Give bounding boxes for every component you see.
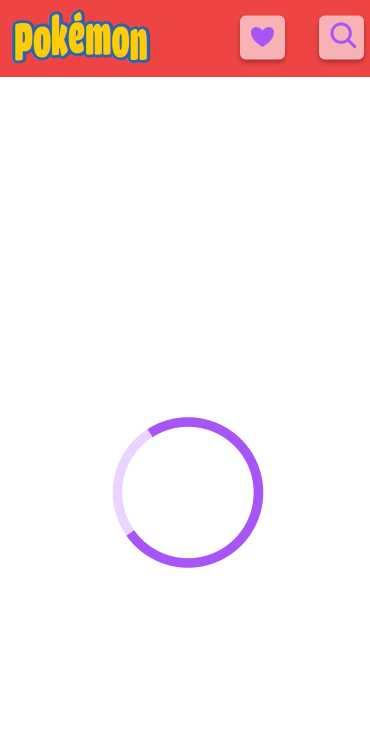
staticText: n [274, 4, 313, 72]
staticText: k [102, 0, 139, 68]
staticText: o [234, 1, 274, 69]
staticText: é [132, 0, 170, 66]
staticText: k [89, 2, 126, 69]
staticText: o [58, 6, 98, 73]
staticText: o [222, 4, 262, 72]
staticText: o [235, 3, 275, 70]
staticText: é [132, 0, 170, 62]
staticText: n [274, 7, 313, 75]
staticText: k [101, 2, 138, 69]
staticText: P [14, 6, 55, 74]
staticText: k [98, 0, 135, 65]
staticText: P [8, 8, 49, 75]
staticText: é [132, 1, 170, 69]
staticText: é [126, 0, 164, 67]
staticText: P [14, 9, 55, 77]
staticText: P [8, 5, 49, 72]
staticText: o [61, 4, 101, 72]
button[interactable]: Favorites [240, 16, 285, 60]
staticText: é [138, 0, 176, 67]
staticText: k [95, 0, 132, 68]
staticText: n [262, 7, 301, 75]
staticText: n [268, 6, 307, 73]
staticText: n [261, 6, 300, 73]
staticText: o [61, 1, 101, 69]
staticText: é [129, 1, 167, 68]
staticText: o [222, 1, 262, 69]
staticText: k [98, 3, 135, 70]
staticText: o [225, 0, 265, 67]
staticText: o [228, 0, 268, 67]
staticText: o [52, 6, 92, 73]
staticText: é [135, 1, 173, 68]
staticText: k [92, 0, 129, 65]
staticText: n [262, 4, 301, 72]
staticText: P [11, 9, 52, 76]
staticText: o [49, 1, 89, 69]
staticText: n [275, 6, 314, 73]
staticText: é [138, 0, 176, 64]
staticText: é [126, 0, 164, 64]
staticText: n [265, 3, 304, 70]
staticText: é [125, 0, 163, 66]
staticText: o [62, 3, 102, 70]
staticText: P [20, 5, 61, 72]
staticText: o [52, 0, 92, 67]
staticText: o [228, 6, 268, 73]
staticText: o [55, 3, 95, 70]
staticText: k [88, 0, 125, 68]
staticText: n [268, 9, 307, 76]
staticText: n [265, 9, 304, 76]
staticText: o [49, 4, 89, 72]
button[interactable]: Search [319, 16, 364, 60]
staticText: P [20, 8, 61, 75]
staticText: é [139, 0, 177, 66]
staticText: P [7, 6, 48, 74]
staticText: é [135, 0, 173, 63]
staticText: P [17, 9, 58, 76]
staticText: k [95, 3, 132, 71]
staticText: n [271, 3, 310, 70]
staticText: n [271, 9, 310, 76]
staticText: P [14, 3, 55, 70]
staticText: o [58, 0, 98, 67]
staticText: k [92, 3, 129, 70]
staticText: k [101, 0, 138, 66]
staticText: o [55, 0, 95, 67]
staticText: o [48, 3, 88, 70]
staticText: k [95, 0, 132, 64]
staticText: o [225, 6, 265, 73]
staticText: k [89, 0, 126, 66]
staticText: P [17, 4, 58, 71]
staticText: o [55, 6, 95, 73]
staticText: o [234, 4, 274, 72]
staticText: o [231, 6, 271, 73]
staticText: P [21, 6, 62, 74]
staticText: o [221, 3, 261, 70]
staticText: n [268, 3, 307, 70]
staticText: é [129, 0, 167, 63]
staticText: P [11, 4, 52, 71]
staticText: o [228, 3, 268, 70]
staticText: o [231, 0, 271, 67]
